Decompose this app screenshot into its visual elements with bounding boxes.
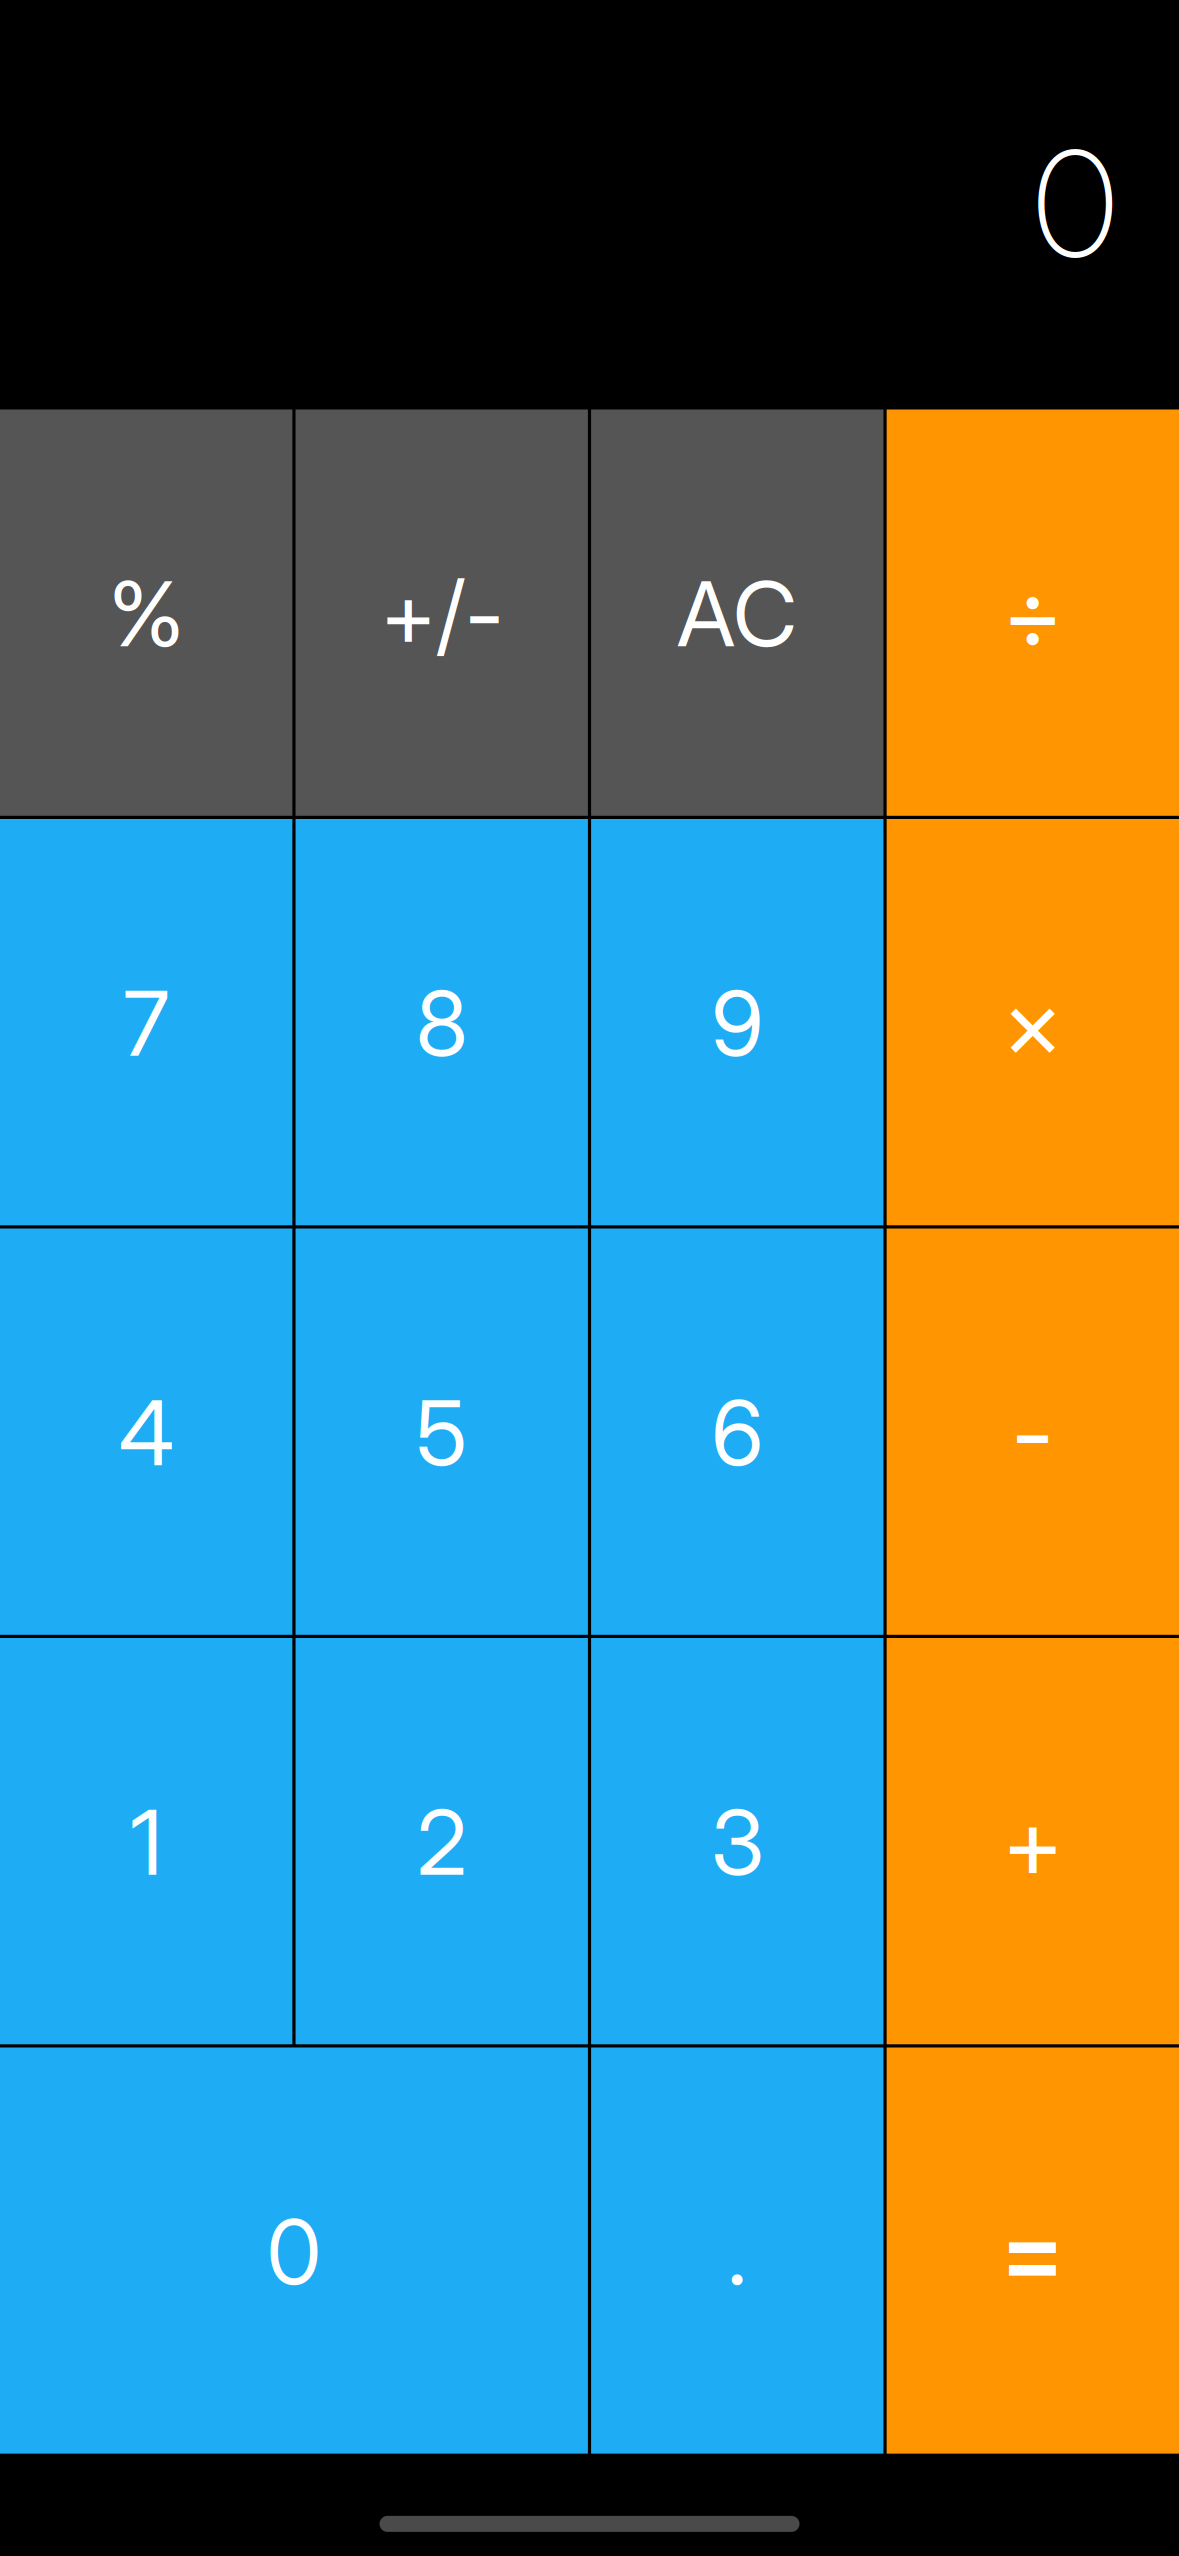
button[interactable]: Decimal point	[591, 2047, 883, 2454]
staticText: 7	[123, 969, 169, 1077]
button[interactable]: 0	[0, 2047, 588, 2454]
button[interactable]: 4	[0, 1228, 292, 1635]
staticText: 3	[711, 1788, 764, 1896]
button[interactable]: 8	[296, 819, 588, 1225]
staticText: ×	[1002, 964, 1063, 1082]
staticText: 2	[417, 1788, 467, 1896]
staticText: 1	[130, 1788, 162, 1896]
button[interactable]: Divide	[887, 409, 1179, 816]
staticText: 9	[711, 969, 763, 1077]
staticText: 0	[1033, 115, 1117, 292]
staticText: 0	[266, 2198, 321, 2306]
button[interactable]: 3	[591, 1638, 883, 2044]
staticText: =	[1000, 2191, 1065, 2312]
button[interactable]: Toggle sign	[296, 409, 588, 816]
button[interactable]: 6	[591, 1228, 883, 1635]
staticText: %	[109, 560, 184, 668]
staticText: AC	[677, 560, 798, 668]
staticText: 6	[711, 1379, 763, 1487]
button[interactable]: 1	[0, 1638, 292, 2044]
button[interactable]: 2	[296, 1638, 588, 2044]
button[interactable]: 7	[0, 819, 292, 1225]
staticText: 8	[416, 969, 468, 1077]
button[interactable]: 5	[296, 1228, 588, 1635]
staticText: -	[1012, 1374, 1054, 1492]
staticText: .	[727, 2198, 747, 2306]
staticText: ÷	[1002, 555, 1063, 673]
staticText: 4	[119, 1379, 174, 1487]
button[interactable]: Multiply	[887, 819, 1179, 1225]
staticText: +/-	[380, 560, 503, 668]
staticText: 5	[416, 1379, 468, 1487]
button[interactable]: All clear	[591, 409, 883, 816]
button[interactable]: Equals	[887, 2047, 1179, 2454]
button[interactable]: Percent	[0, 409, 292, 816]
button[interactable]: Subtract	[887, 1228, 1179, 1635]
button[interactable]: 9	[591, 819, 883, 1225]
button[interactable]: Add	[887, 1638, 1179, 2044]
staticText: +	[1002, 1783, 1063, 1901]
